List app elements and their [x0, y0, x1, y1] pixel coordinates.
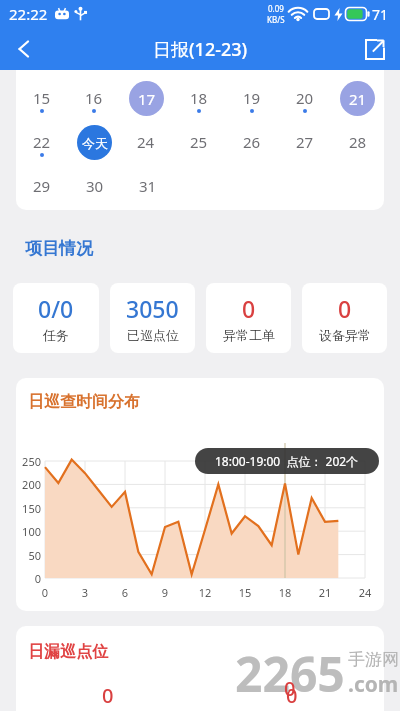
staticText: 日漏巡点位	[28, 642, 108, 662]
staticText: 12	[195, 585, 215, 600]
staticText: 0	[16, 571, 41, 586]
staticText: 150	[16, 501, 41, 516]
staticText: 24	[355, 585, 375, 600]
staticText: 22:22	[9, 4, 48, 24]
button[interactable]	[6, 32, 40, 66]
staticText: 22	[33, 132, 51, 152]
staticText: 21	[315, 585, 335, 600]
staticText: 0.09	[268, 3, 284, 14]
button[interactable]: 19	[225, 76, 278, 120]
button[interactable]: 0/0	[13, 283, 99, 353]
button[interactable]	[356, 31, 392, 67]
button[interactable]: 24	[120, 120, 172, 164]
button[interactable]: 22	[16, 120, 68, 164]
staticText: 30	[86, 176, 104, 196]
staticText: 0/0	[38, 293, 74, 324]
staticText: 2265	[235, 641, 345, 706]
staticText: 27	[296, 132, 314, 152]
staticText: 手游网	[348, 649, 399, 670]
staticText: .com	[348, 670, 399, 699]
button[interactable]: 今天	[68, 120, 120, 164]
staticText: 0	[286, 682, 298, 709]
staticText: 任务	[43, 327, 69, 343]
button[interactable]: 27	[278, 120, 331, 164]
staticText: 已巡点位	[127, 327, 179, 343]
button[interactable]: 31	[121, 164, 174, 208]
staticText: 15	[33, 88, 51, 108]
staticText: 19	[243, 88, 261, 108]
button[interactable]: 21	[331, 76, 384, 120]
staticText: 18	[275, 585, 295, 600]
button[interactable]: 16	[68, 76, 120, 120]
staticText: 50	[16, 548, 41, 563]
staticText: 17	[138, 89, 156, 109]
staticText: 0	[242, 293, 256, 324]
staticText: 0	[338, 293, 352, 324]
staticText: 0	[102, 682, 114, 709]
staticText: 3050	[126, 293, 179, 324]
staticText: KB/S	[267, 14, 285, 25]
staticText: 9	[155, 585, 175, 600]
staticText: 71	[372, 5, 389, 24]
staticText: 100	[16, 524, 41, 539]
staticText: 3	[75, 585, 95, 600]
button[interactable]: 0	[206, 283, 291, 353]
staticText: 20	[296, 88, 314, 108]
staticText: 24	[137, 132, 155, 152]
staticText: 31	[139, 176, 157, 196]
staticText: 25	[190, 132, 208, 152]
button[interactable]: 30	[68, 164, 121, 208]
button[interactable]: 29	[16, 164, 68, 208]
staticText: 日报(12-23)	[153, 37, 248, 62]
button[interactable]: 17	[120, 76, 172, 120]
button[interactable]: 28	[331, 120, 384, 164]
staticText: 设备异常	[319, 327, 371, 343]
staticText: 18:00-19:00 点位： 202个	[215, 453, 359, 469]
staticText: 0	[35, 585, 55, 600]
staticText: 项目情况	[25, 238, 93, 259]
staticText: 6	[115, 585, 135, 600]
staticText: 26	[243, 132, 261, 152]
staticText: 异常工单	[223, 327, 275, 343]
button[interactable]: 15	[16, 76, 68, 120]
staticText: 15	[235, 585, 255, 600]
staticText: 日巡查时间分布	[28, 392, 140, 412]
staticText: 200	[16, 477, 41, 492]
staticText: 18	[190, 88, 208, 108]
button[interactable]: 25	[172, 120, 225, 164]
button[interactable]: 18	[172, 76, 225, 120]
button[interactable]: 26	[225, 120, 278, 164]
button[interactable]: 20	[278, 76, 331, 120]
staticText: 29	[33, 176, 51, 196]
staticText: 250	[16, 454, 41, 469]
staticText: 28	[349, 132, 367, 152]
staticText: 21	[349, 89, 367, 109]
staticText: 今天	[82, 135, 108, 151]
staticText: 0	[284, 675, 296, 702]
button[interactable]: 3050	[110, 283, 195, 353]
staticText: 16	[85, 88, 103, 108]
button[interactable]: 0	[302, 283, 387, 353]
